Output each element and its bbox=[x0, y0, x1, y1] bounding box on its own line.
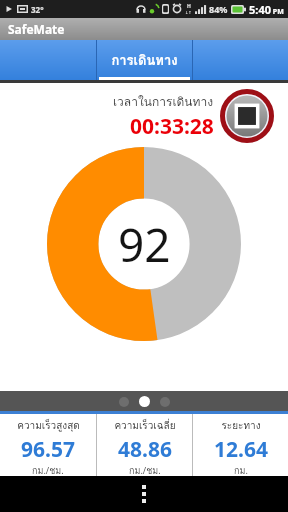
button[interactable] bbox=[193, 40, 288, 80]
staticText: กม./ชม. bbox=[32, 464, 64, 476]
staticText: H bbox=[187, 3, 191, 10]
staticText: 32° bbox=[31, 4, 44, 15]
button[interactable]: Page bbox=[160, 397, 170, 407]
staticText: PM bbox=[271, 7, 284, 17]
staticText: 12.64 bbox=[214, 435, 268, 464]
button[interactable]: Page 2 selected bbox=[139, 396, 150, 407]
button[interactable]: ความเร็วสูงสุด bbox=[0, 414, 96, 476]
staticText: ↓↑ bbox=[185, 10, 192, 15]
staticText: 96.57 bbox=[21, 435, 75, 464]
staticText: ความเร็วสูงสุด bbox=[17, 418, 80, 434]
button[interactable] bbox=[0, 40, 96, 80]
staticText: 00:33:28 bbox=[130, 112, 214, 141]
staticText: การเดินทาง bbox=[111, 50, 178, 71]
staticText: ระยะทาง bbox=[221, 418, 261, 434]
staticText: 84% bbox=[209, 3, 228, 15]
staticText: กม./ชม. bbox=[129, 464, 161, 476]
button[interactable]: ความเร็วเฉลี่ย bbox=[97, 414, 192, 476]
staticText: SafeMate bbox=[8, 21, 65, 37]
button[interactable]: Page bbox=[119, 397, 129, 407]
button[interactable]: การเดินทาง bbox=[97, 40, 192, 80]
staticText: 5:40 bbox=[249, 2, 271, 17]
button[interactable]: ระยะทาง bbox=[193, 414, 288, 476]
staticText: 92 bbox=[118, 213, 171, 276]
staticText: 48.86 bbox=[118, 435, 172, 464]
button[interactable]: More options bbox=[132, 482, 156, 506]
staticText: กม. bbox=[234, 464, 248, 476]
button[interactable]: Stop bbox=[220, 89, 274, 143]
staticText: ความเร็วเฉลี่ย bbox=[114, 418, 176, 434]
staticText: เวลาในการเดินทาง bbox=[113, 92, 214, 111]
